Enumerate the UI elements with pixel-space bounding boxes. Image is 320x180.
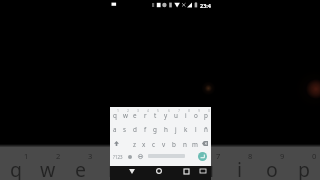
staticText: 2 (127, 108, 129, 113)
button[interactable]: t (128, 147, 160, 180)
staticText: 3 (88, 151, 93, 161)
button[interactable]: n (180, 136, 190, 150)
staticText: ñ (204, 125, 208, 134)
button[interactable]: x (139, 136, 149, 150)
staticText: c (152, 140, 156, 149)
button[interactable]: f (140, 121, 150, 135)
button[interactable]: v (159, 136, 169, 150)
button[interactable]: t (150, 107, 160, 121)
staticText: q (10, 156, 22, 180)
button[interactable]: k (181, 121, 191, 135)
button[interactable]: i (181, 107, 191, 121)
button[interactable]: Settings (135, 150, 145, 163)
button[interactable]: b (169, 136, 179, 150)
button[interactable]: Switch keyboard (198, 166, 208, 176)
button[interactable]: e (130, 107, 140, 121)
staticText: 6 (184, 151, 189, 161)
staticText: 3 (137, 108, 139, 113)
staticText: v (162, 140, 166, 149)
button[interactable]: s (120, 121, 130, 135)
staticText: t (154, 111, 157, 120)
staticText: w (40, 156, 56, 180)
staticText: 4 (147, 108, 149, 113)
button[interactable]: ñ (201, 121, 211, 135)
staticText: z (133, 140, 136, 149)
button[interactable]: Shift (110, 136, 123, 150)
staticText: j (175, 125, 177, 134)
button[interactable]: Emoji (125, 150, 135, 163)
button[interactable]: ?123 (111, 150, 124, 163)
button[interactable]: p (201, 107, 211, 121)
staticText: i (237, 156, 243, 180)
staticText: x (142, 140, 146, 149)
button[interactable]: z (129, 136, 139, 150)
staticText: m (192, 140, 198, 149)
staticText: 6 (168, 108, 170, 113)
staticText: n (183, 140, 187, 149)
button[interactable]: o (191, 107, 201, 121)
staticText: 8 (248, 151, 253, 161)
staticText: e (75, 156, 86, 180)
button[interactable]: Back (127, 166, 137, 176)
button[interactable]: d (130, 121, 140, 135)
button[interactable]: u (171, 107, 181, 121)
button[interactable]: e (64, 147, 96, 180)
button[interactable]: r (140, 107, 150, 121)
staticText: y (164, 111, 168, 120)
staticText: 8 (188, 108, 190, 113)
button[interactable]: w (32, 147, 64, 180)
staticText: 0 (208, 108, 210, 113)
staticText: f (144, 125, 147, 134)
button[interactable]: Recents (181, 166, 191, 176)
staticText: i (185, 111, 187, 120)
staticText: 23:4 (200, 2, 211, 9)
staticText: ?123 (113, 154, 123, 160)
staticText: q (113, 111, 117, 120)
staticText: 1 (24, 151, 29, 161)
staticText: e (133, 111, 137, 120)
button[interactable]: r (96, 147, 128, 180)
staticText: r (108, 156, 117, 180)
staticText: p (204, 111, 208, 120)
button[interactable]: h (161, 121, 171, 135)
staticText: d (133, 125, 137, 134)
button[interactable]: g (150, 121, 160, 135)
staticText: 9 (198, 108, 200, 113)
staticText: l (195, 125, 197, 134)
staticText: b (172, 140, 176, 149)
button[interactable]: o (256, 147, 288, 180)
button[interactable]: a (110, 121, 120, 135)
button[interactable]: u (192, 147, 224, 180)
staticText: 4 (120, 151, 125, 161)
staticText: u (174, 111, 178, 120)
staticText: 9 (280, 151, 285, 161)
staticText: h (164, 125, 168, 134)
button[interactable]: Enter (198, 152, 207, 161)
staticText: o (266, 156, 278, 180)
button[interactable]: w (120, 107, 130, 121)
button[interactable]: j (171, 121, 181, 135)
staticText: 0 (312, 151, 317, 161)
staticText: 7 (178, 108, 180, 113)
button[interactable]: m (190, 136, 200, 150)
staticText: 5 (152, 151, 157, 161)
button[interactable]: p (288, 147, 320, 180)
button[interactable]: Home (154, 166, 164, 176)
staticText: 2 (56, 151, 61, 161)
staticText: s (123, 125, 127, 134)
staticText: 1 (117, 108, 119, 113)
button[interactable]: l (191, 121, 201, 135)
button[interactable]: i (224, 147, 256, 180)
button[interactable]: c (149, 136, 159, 150)
staticText: 7 (216, 151, 221, 161)
button[interactable]: q (110, 107, 120, 121)
button[interactable]: y (160, 147, 192, 180)
staticText: k (184, 125, 188, 134)
staticText: g (153, 125, 157, 134)
staticText: r (144, 111, 147, 120)
button[interactable]: Backspace (198, 136, 211, 150)
button[interactable]: y (161, 107, 171, 121)
button[interactable]: q (0, 147, 32, 180)
staticText: t (140, 156, 148, 180)
